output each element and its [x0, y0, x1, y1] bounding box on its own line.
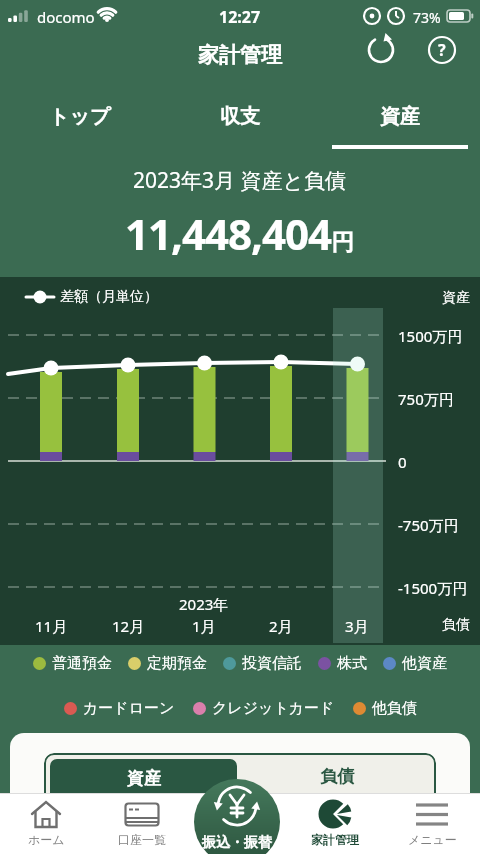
- button[interactable]: 振込・振替: [194, 779, 280, 854]
- button[interactable]: メニュー: [388, 793, 476, 854]
- button[interactable]: ?: [422, 30, 462, 70]
- button[interactable]: 資産: [320, 95, 480, 137]
- button[interactable]: 資産: [50, 759, 237, 803]
- staticText: 他負債: [372, 699, 417, 718]
- staticText: 他資産: [402, 654, 447, 673]
- staticText: 0: [398, 452, 407, 472]
- staticText: 資産: [127, 768, 161, 789]
- staticText: メニュー: [408, 832, 457, 847]
- staticText: 家計管理: [198, 42, 282, 68]
- staticText: 家計管理: [311, 832, 359, 847]
- staticText: 振込・振替: [202, 834, 272, 852]
- staticText: 12月: [112, 616, 145, 636]
- staticText: -1500万円: [398, 578, 468, 598]
- staticText: カードローン: [83, 699, 175, 718]
- button[interactable]: ホーム: [2, 793, 90, 854]
- button[interactable]: 口座一覧: [98, 793, 186, 854]
- staticText: 2月: [269, 616, 293, 636]
- button[interactable]: 負債: [237, 753, 436, 803]
- staticText: 2023年3月 資産と負債: [133, 166, 347, 195]
- staticText: 負債: [442, 616, 470, 634]
- staticText: 11,448,404円: [125, 205, 355, 262]
- staticText: 株式: [337, 654, 367, 673]
- staticText: 750万円: [398, 389, 454, 409]
- staticText: 3月: [345, 616, 369, 636]
- staticText: 資産: [380, 104, 420, 129]
- staticText: 収支: [220, 104, 260, 129]
- staticText: クレジットカード: [212, 699, 335, 718]
- staticText: 1月: [192, 616, 216, 636]
- staticText: -750万円: [398, 515, 459, 535]
- staticText: 資産: [442, 289, 470, 307]
- staticText: 12:27: [219, 6, 261, 28]
- staticText: 1500万円: [398, 326, 463, 346]
- staticText: 差額（月単位）: [60, 288, 158, 306]
- staticText: 73%: [413, 8, 441, 27]
- staticText: docomo: [37, 7, 95, 27]
- staticText: ホーム: [28, 832, 65, 847]
- button[interactable]: トップ: [0, 95, 160, 137]
- staticText: 普通預金: [52, 654, 112, 673]
- staticText: トップ: [49, 104, 111, 129]
- staticText: 負債: [320, 766, 354, 787]
- staticText: 定期預金: [147, 654, 207, 673]
- button[interactable]: 家計管理: [291, 793, 379, 854]
- button[interactable]: [361, 30, 401, 70]
- staticText: 2023年: [179, 594, 229, 614]
- staticText: ?: [438, 39, 446, 61]
- staticText: 11月: [35, 616, 68, 636]
- staticText: 口座一覧: [118, 832, 166, 847]
- staticText: 投資信託: [242, 654, 302, 673]
- button[interactable]: 収支: [160, 95, 320, 137]
